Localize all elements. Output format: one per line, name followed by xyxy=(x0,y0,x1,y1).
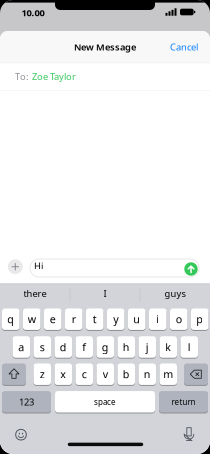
staticText: y xyxy=(113,312,118,326)
staticText: m xyxy=(163,367,173,381)
staticText: b xyxy=(123,367,130,381)
button[interactable]: space xyxy=(55,391,155,413)
staticText: o xyxy=(176,312,182,326)
button[interactable]: there xyxy=(2,283,68,303)
button[interactable]: i xyxy=(149,308,166,330)
staticText: space xyxy=(94,396,116,407)
button[interactable]: q xyxy=(2,308,19,330)
button[interactable] xyxy=(184,363,208,385)
staticText: x xyxy=(60,367,66,381)
button[interactable]: u xyxy=(128,308,145,330)
staticText: 10.00 xyxy=(21,6,44,19)
staticText: z xyxy=(40,367,45,381)
button[interactable]: d xyxy=(54,336,72,358)
button[interactable] xyxy=(14,428,28,442)
button[interactable]: I xyxy=(72,283,138,303)
staticText: h xyxy=(123,340,130,354)
button[interactable]: l xyxy=(180,336,198,358)
button[interactable]: w xyxy=(23,308,40,330)
button[interactable]: return xyxy=(159,391,208,413)
button[interactable]: r xyxy=(65,308,82,330)
button[interactable]: c xyxy=(75,363,93,385)
staticText: i xyxy=(156,312,159,326)
button[interactable]: guys xyxy=(142,283,208,303)
button[interactable]: z xyxy=(33,363,51,385)
staticText: w xyxy=(28,312,36,326)
staticText: s xyxy=(40,340,45,354)
staticText: g xyxy=(102,340,109,354)
staticText: guys xyxy=(164,287,185,300)
button[interactable]: o xyxy=(170,308,187,330)
staticText: k xyxy=(165,340,171,354)
staticText: 123 xyxy=(19,396,34,408)
staticText: f xyxy=(82,340,86,354)
staticText: To: xyxy=(15,70,29,83)
button[interactable]: Cancel xyxy=(170,41,198,53)
button[interactable]: j xyxy=(138,336,156,358)
staticText: New Message xyxy=(74,41,136,53)
button[interactable]: m xyxy=(159,363,177,385)
button[interactable]: n xyxy=(138,363,156,385)
button[interactable]: y xyxy=(107,308,124,330)
staticText: v xyxy=(103,367,108,381)
button[interactable]: k xyxy=(159,336,177,358)
button[interactable]: s xyxy=(33,336,51,358)
button[interactable]: t xyxy=(86,308,103,330)
staticText: there xyxy=(23,287,46,300)
button[interactable]: p xyxy=(191,308,208,330)
staticText: q xyxy=(7,312,14,326)
button[interactable] xyxy=(184,262,198,276)
staticText: u xyxy=(133,312,140,326)
button[interactable] xyxy=(2,363,26,385)
staticText: n xyxy=(144,367,151,381)
button[interactable]: e xyxy=(44,308,61,330)
staticText: t xyxy=(93,312,97,326)
staticText: Zoe Taylor xyxy=(32,70,76,83)
staticText: e xyxy=(50,312,56,326)
staticText: return xyxy=(171,396,195,407)
button[interactable]: h xyxy=(117,336,135,358)
staticText: a xyxy=(18,340,24,354)
button[interactable] xyxy=(8,259,23,274)
staticText: I xyxy=(103,287,106,300)
button[interactable]: 123 xyxy=(2,391,51,413)
button[interactable]: To: xyxy=(0,63,210,90)
button[interactable]: a xyxy=(12,336,30,358)
button[interactable]: x xyxy=(54,363,72,385)
staticText: Cancel xyxy=(170,41,198,53)
button[interactable] xyxy=(182,427,196,441)
button[interactable]: g xyxy=(96,336,114,358)
button[interactable]: v xyxy=(96,363,114,385)
button[interactable]: b xyxy=(117,363,135,385)
button[interactable]: f xyxy=(75,336,93,358)
staticText: r xyxy=(72,312,76,326)
staticText: p xyxy=(196,312,203,326)
staticText: l xyxy=(188,340,191,354)
staticText: c xyxy=(82,367,87,381)
staticText: d xyxy=(60,340,67,354)
staticText: Hi xyxy=(34,260,43,272)
button[interactable] xyxy=(30,259,199,277)
staticText: j xyxy=(146,340,149,354)
